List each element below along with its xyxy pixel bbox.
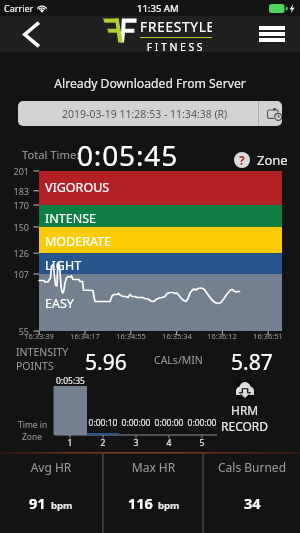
- staticText: 3: [128, 437, 144, 449]
- button[interactable]: HRM Record: [214, 381, 275, 434]
- staticText: 183: [5, 185, 29, 197]
- staticText: 16:36:51: [248, 331, 288, 341]
- staticText: 107: [5, 268, 29, 280]
- staticText: CALs/MIN: [154, 353, 203, 367]
- staticText: 2019-03-19 11:28:53 - 11:34:38 (R): [62, 107, 228, 121]
- staticText: 34: [244, 493, 261, 513]
- staticText: 0:00:10: [86, 417, 120, 429]
- staticText: 2: [95, 437, 111, 449]
- staticText: 16:34:55: [111, 331, 151, 341]
- button[interactable]: Avg HR: [0, 453, 102, 533]
- staticText: Already Downloaded From Server: [0, 75, 300, 92]
- button[interactable]: Back: [12, 16, 48, 52]
- staticText: Total Time:: [22, 147, 80, 162]
- button[interactable]: Cals Burned: [204, 453, 300, 533]
- staticText: EASY: [45, 295, 74, 312]
- staticText: RECORD: [221, 418, 269, 434]
- staticText: 116: [128, 493, 153, 513]
- staticText: 16:34:17: [65, 331, 105, 341]
- staticText: 16:33:39: [19, 331, 59, 341]
- staticText: 0:00:00: [185, 417, 219, 429]
- staticText: Zone: [22, 431, 43, 443]
- staticText: 201: [5, 165, 29, 177]
- staticText: 150: [5, 221, 29, 233]
- staticText: 0:05:35: [46, 375, 95, 387]
- staticText: HRM: [231, 402, 259, 418]
- button[interactable]: ?: [234, 151, 288, 169]
- staticText: Avg HR: [0, 459, 102, 475]
- staticText: Cals Burned: [204, 459, 300, 475]
- staticText: 5.96: [85, 348, 127, 377]
- staticText: ?: [239, 152, 245, 168]
- staticText: INTENSITY: [16, 345, 69, 359]
- staticText: Max HR: [104, 459, 203, 475]
- staticText: INTENSE: [45, 210, 96, 227]
- staticText: LIGHT: [45, 257, 82, 274]
- staticText: bpm: [51, 499, 73, 512]
- button[interactable]: 2019-03-19 11:28:53 - 11:34:38 (R): [18, 101, 282, 126]
- staticText: 0:00:00: [119, 417, 153, 429]
- staticText: MODERATE: [45, 233, 111, 250]
- staticText: 4: [161, 437, 177, 449]
- staticText: 55: [5, 325, 29, 337]
- staticText: 0:05:45: [77, 136, 179, 174]
- staticText: Carrier: [4, 2, 34, 14]
- staticText: FITNESS: [140, 40, 212, 54]
- staticText: 16:36:12: [202, 331, 242, 341]
- staticText: 126: [5, 247, 29, 259]
- staticText: Time in: [18, 419, 48, 431]
- staticText: Zone: [257, 151, 288, 169]
- staticText: POINTS: [16, 359, 54, 373]
- staticText: 16:35:34: [157, 331, 197, 341]
- staticText: VIGOROUS: [45, 179, 110, 196]
- staticText: 0:00:00: [152, 417, 186, 429]
- staticText: 5.87: [231, 348, 273, 377]
- button[interactable]: Menu: [252, 16, 287, 52]
- staticText: 170: [5, 199, 29, 211]
- button[interactable]: Max HR: [104, 453, 203, 533]
- staticText: 1: [62, 437, 78, 449]
- staticText: 11:35 AM: [137, 2, 179, 15]
- staticText: bpm: [158, 499, 180, 512]
- staticText: 91: [29, 493, 46, 513]
- staticText: FREESTYLE: [140, 18, 212, 36]
- staticText: 5: [194, 437, 210, 449]
